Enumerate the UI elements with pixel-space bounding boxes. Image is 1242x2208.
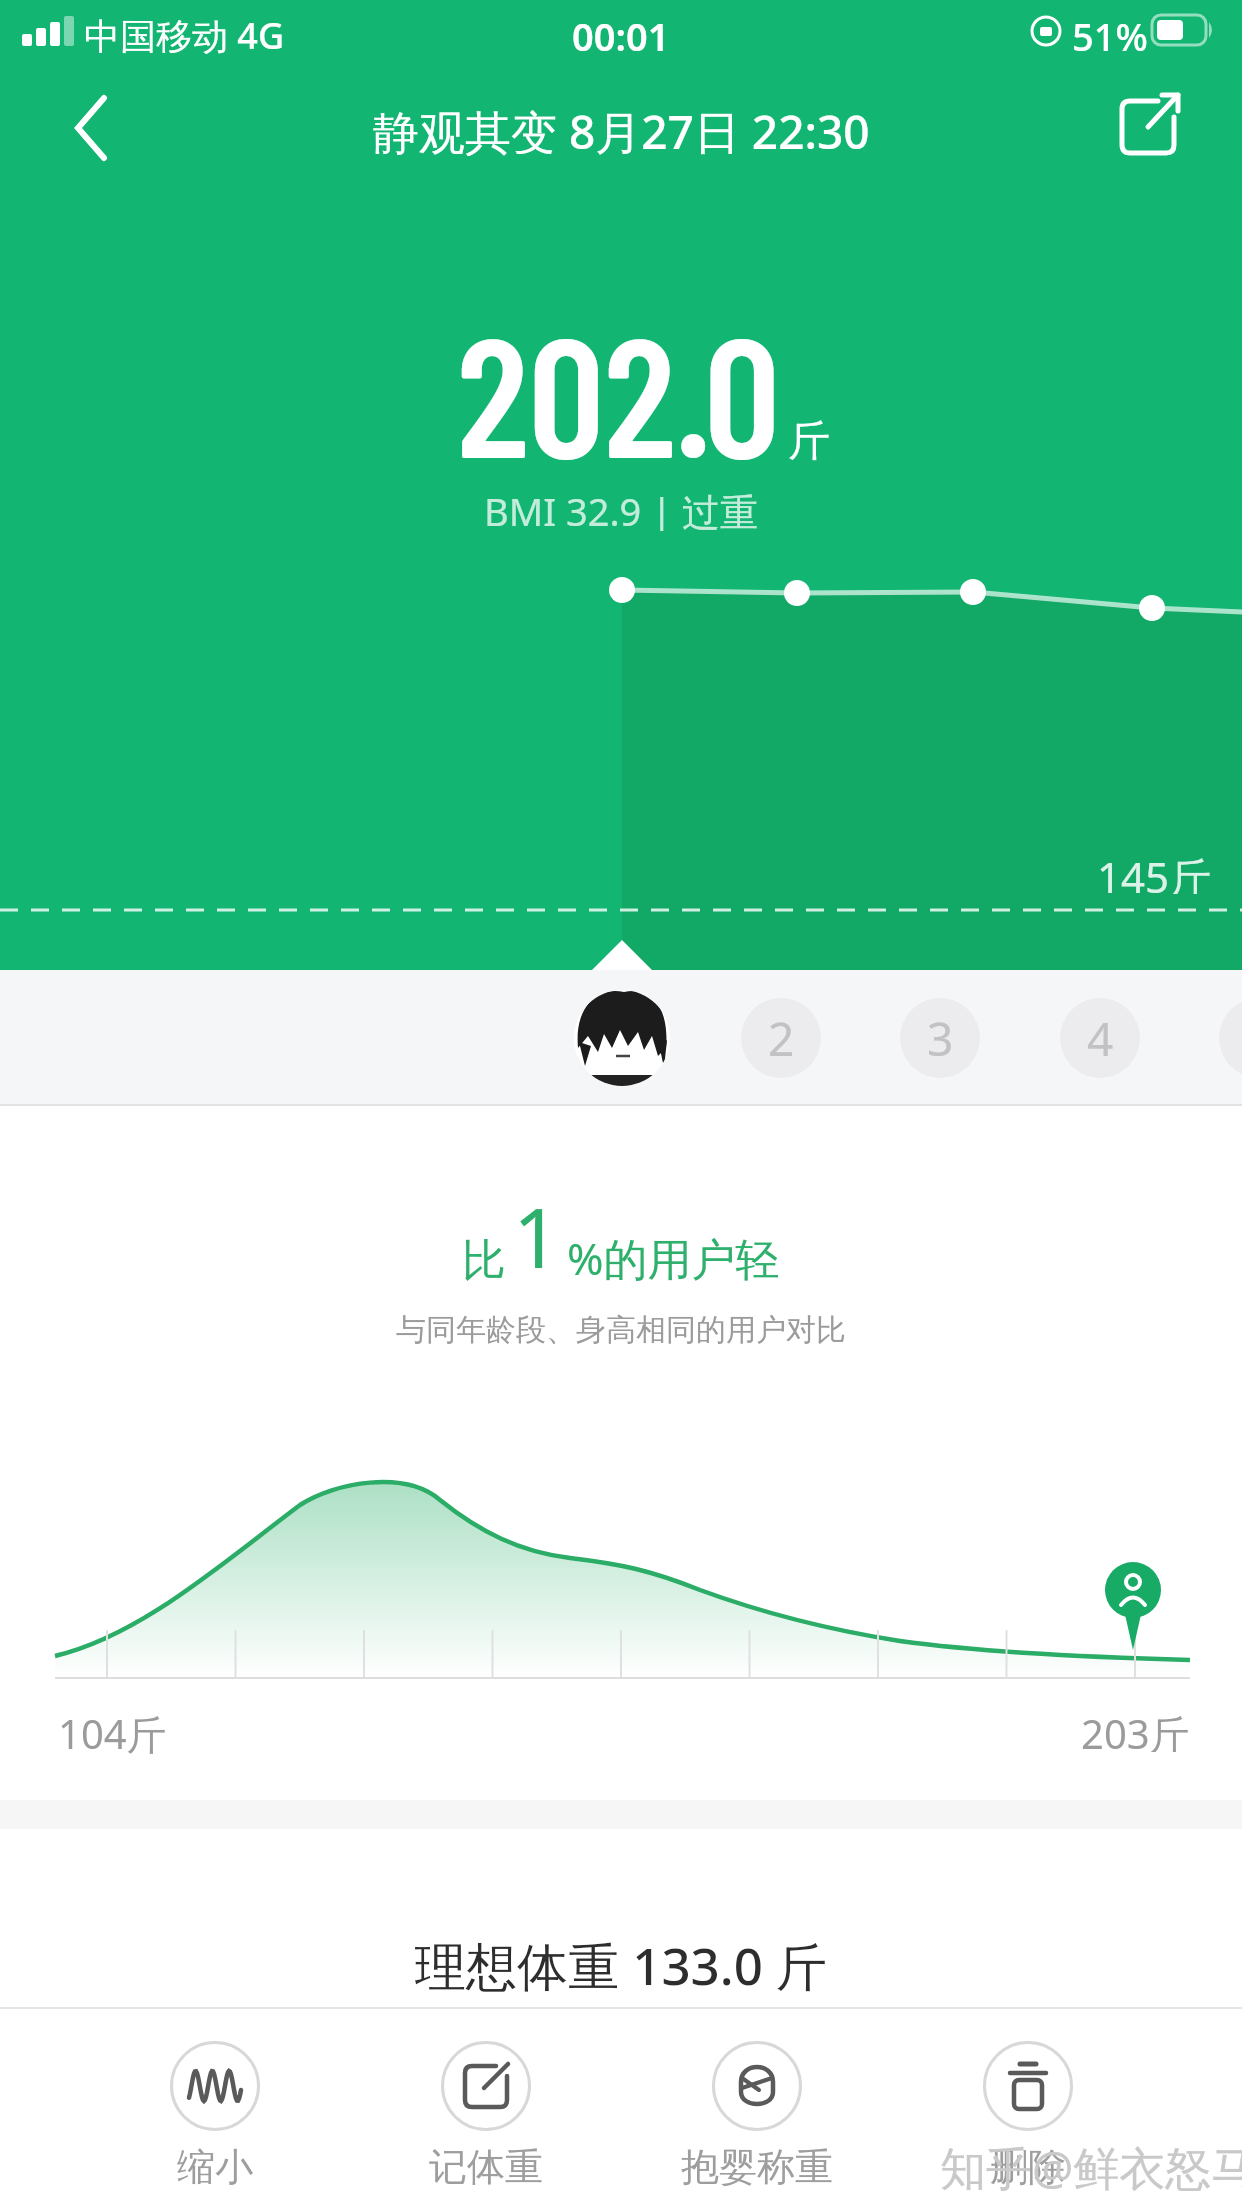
staticText: 静观其变 8月27日 22:30 <box>373 100 870 156</box>
staticText: %的用户轻 <box>567 1228 780 1288</box>
button[interactable] <box>40 80 150 180</box>
staticText: 理想体重 133.0 斤 <box>415 1930 828 2000</box>
staticText: 与同年龄段、身高相同的用户对比 <box>396 1311 846 1349</box>
button[interactable]: 记体重 <box>381 2025 591 2195</box>
staticText: 202.0 <box>457 290 780 470</box>
button[interactable]: 删除 <box>923 2025 1133 2195</box>
staticText: 1 <box>513 1180 560 1292</box>
staticText: 51% <box>1072 10 1148 62</box>
staticText: 知乎@鲜衣怒马 <box>940 2136 1242 2199</box>
button[interactable]: 5 <box>1219 998 1242 1078</box>
staticText: 中国移动 4G <box>84 11 285 60</box>
staticText: 斤 <box>788 415 830 468</box>
staticText: 比 <box>462 1233 506 1288</box>
button[interactable]: 2 <box>741 998 821 1078</box>
button[interactable] <box>1100 85 1200 175</box>
staticText: 203斤 <box>1081 1706 1190 1752</box>
button[interactable]: 理想体重 133.0 斤 <box>0 1930 1242 2000</box>
staticText: 记体重 <box>429 2143 543 2191</box>
button[interactable]: 缩小 <box>110 2025 320 2195</box>
button[interactable]: 3 <box>900 998 980 1078</box>
button[interactable]: 抱婴称重 <box>652 2025 862 2195</box>
staticText: 缩小 <box>177 2143 253 2191</box>
staticText: 删除 <box>990 2143 1066 2191</box>
staticText: 145斤 <box>1097 848 1212 894</box>
button[interactable]: 4 <box>1060 998 1140 1078</box>
staticText: 4 <box>1087 1007 1114 1070</box>
button[interactable] <box>574 990 670 1086</box>
staticText: 抱婴称重 <box>681 2143 833 2191</box>
staticText: 104斤 <box>58 1706 167 1761</box>
staticText: 3 <box>927 1007 954 1070</box>
staticText: 00:01 <box>572 10 670 54</box>
staticText: 2 <box>768 1007 795 1070</box>
staticText: BMI 32.9 | 过重 <box>484 485 759 531</box>
